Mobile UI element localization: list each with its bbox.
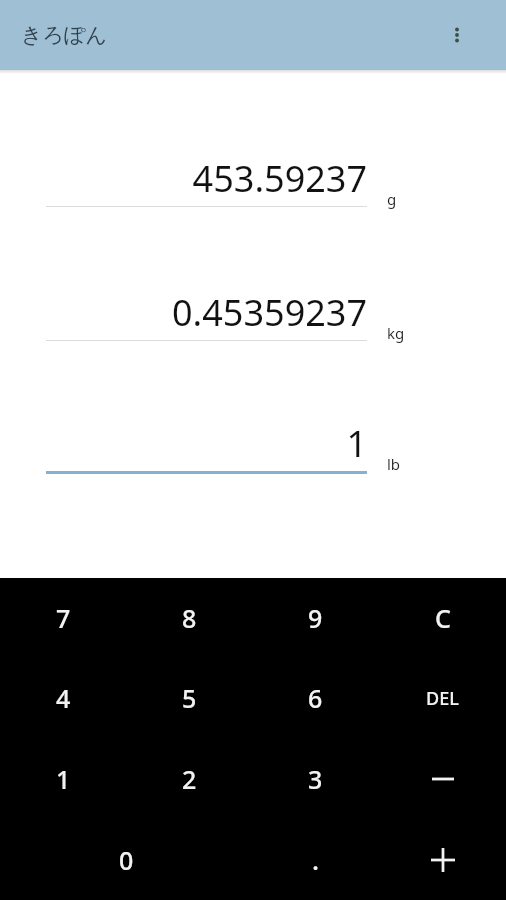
staticText: .	[312, 842, 320, 877]
staticText: g	[387, 189, 397, 209]
staticText: C	[435, 601, 451, 635]
button[interactable]: 453.59237	[0, 154, 506, 228]
button[interactable]: 8	[126, 578, 252, 658]
button[interactable]: 0	[0, 819, 252, 900]
button[interactable]	[379, 819, 506, 900]
button[interactable]: 1	[0, 419, 506, 493]
button[interactable]: 4	[0, 658, 126, 738]
staticText: lb	[387, 454, 401, 474]
staticText: きろぽん	[21, 22, 107, 48]
staticText: kg	[387, 323, 405, 343]
button[interactable]: 0.45359237	[0, 288, 506, 362]
button[interactable]: 7	[0, 578, 126, 658]
staticText: 8	[182, 601, 197, 635]
staticText: 7	[56, 601, 71, 635]
button[interactable]: 3	[252, 738, 379, 819]
staticText: DEL	[426, 686, 459, 711]
staticText: 0	[119, 843, 134, 877]
staticText: 3	[308, 762, 323, 796]
button[interactable]: C	[379, 578, 506, 658]
staticText: 453.59237	[46, 154, 367, 203]
button[interactable]: 5	[126, 658, 252, 738]
staticText: 5	[182, 681, 197, 715]
button[interactable]	[379, 738, 506, 819]
staticText: 6	[308, 681, 323, 715]
button[interactable]: 9	[252, 578, 379, 658]
staticText: 1	[46, 419, 367, 468]
staticText: 0.45359237	[46, 288, 367, 337]
button[interactable]: More options	[438, 16, 476, 54]
button[interactable]: DEL	[379, 658, 506, 738]
button[interactable]: .	[252, 819, 379, 900]
button[interactable]: 2	[126, 738, 252, 819]
staticText: 9	[308, 601, 323, 635]
staticText: 1	[56, 762, 71, 796]
button[interactable]: 1	[0, 738, 126, 819]
staticText: 4	[56, 681, 71, 715]
button[interactable]: 6	[252, 658, 379, 738]
staticText: 2	[182, 762, 197, 796]
